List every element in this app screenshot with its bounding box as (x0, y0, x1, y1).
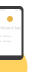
staticText: Welcome back (0, 25, 23, 30)
staticText: ıll ⌁ (15, 8, 21, 12)
staticText: 9:41 (0, 8, 6, 12)
